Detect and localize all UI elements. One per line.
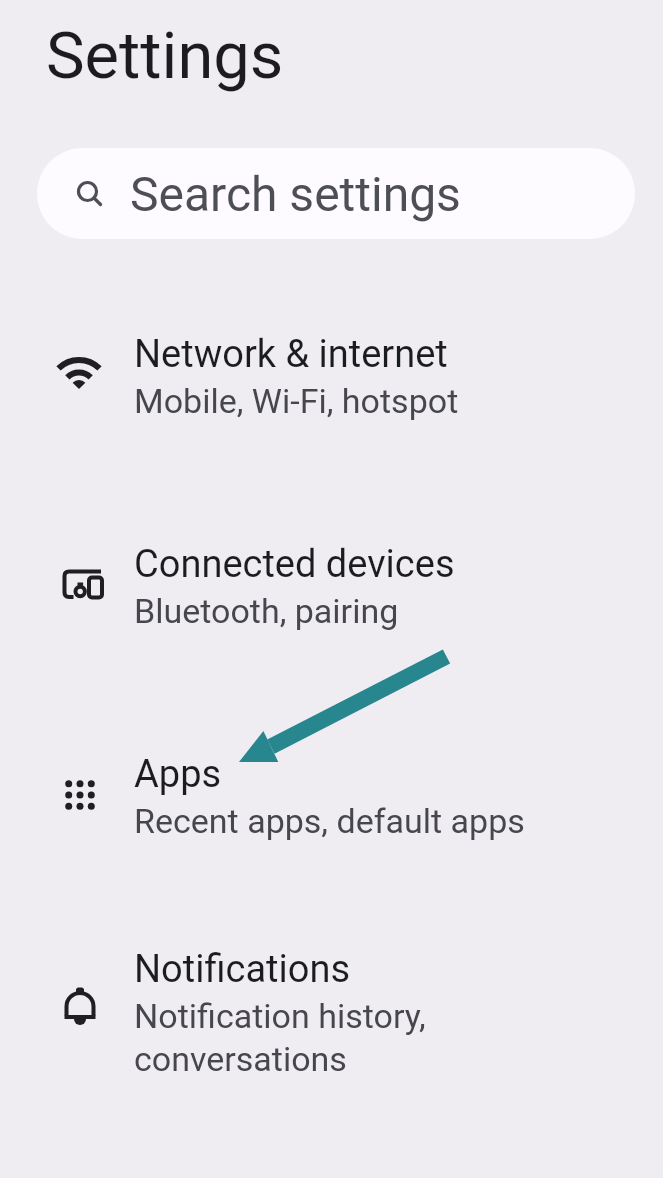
staticText: Network & internet xyxy=(134,332,448,377)
button[interactable]: Search settings xyxy=(37,148,635,239)
staticText: Notifications xyxy=(134,947,351,992)
button[interactable]: Notifications xyxy=(0,901,663,1111)
staticText: Bluetooth, pairing xyxy=(134,591,399,631)
staticText: Notification history, conversations xyxy=(134,996,426,1079)
button[interactable]: Apps xyxy=(0,691,663,901)
staticText: Apps xyxy=(134,752,222,797)
staticText: Mobile, Wi-Fi, hotspot xyxy=(134,381,459,421)
staticText: Recent apps, default apps xyxy=(134,801,525,841)
staticText: Search settings xyxy=(130,166,461,222)
staticText: Connected devices xyxy=(134,542,455,587)
staticText: Settings xyxy=(46,18,284,94)
button[interactable]: Connected devices xyxy=(0,481,663,691)
button[interactable]: Network & internet xyxy=(0,271,663,481)
